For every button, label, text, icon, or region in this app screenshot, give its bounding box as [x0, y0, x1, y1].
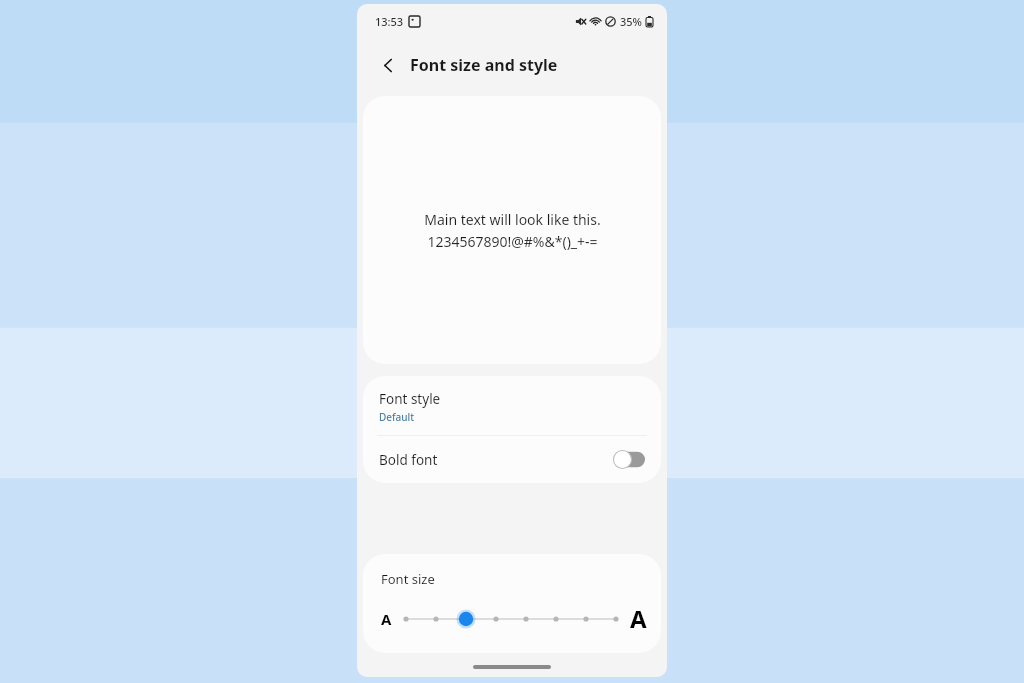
staticText: 35% — [620, 14, 642, 29]
button[interactable]: Font size slider — [400, 607, 622, 631]
staticText: Font size — [381, 570, 435, 588]
button[interactable]: Bold font — [363, 436, 661, 483]
button[interactable]: Back — [373, 50, 403, 80]
staticText: Default — [379, 410, 415, 424]
staticText: Bold font — [379, 451, 438, 469]
staticText: Font style — [379, 390, 441, 408]
staticText: 1234567890!@#%&*()_+-= — [427, 232, 598, 251]
staticText: A — [630, 602, 647, 635]
staticText: A — [381, 609, 392, 629]
staticText: Font size and style — [410, 54, 558, 76]
staticText: 13:53 — [375, 14, 404, 29]
button[interactable]: Font style — [363, 376, 661, 435]
staticText: Main text will look like this. — [424, 210, 601, 229]
